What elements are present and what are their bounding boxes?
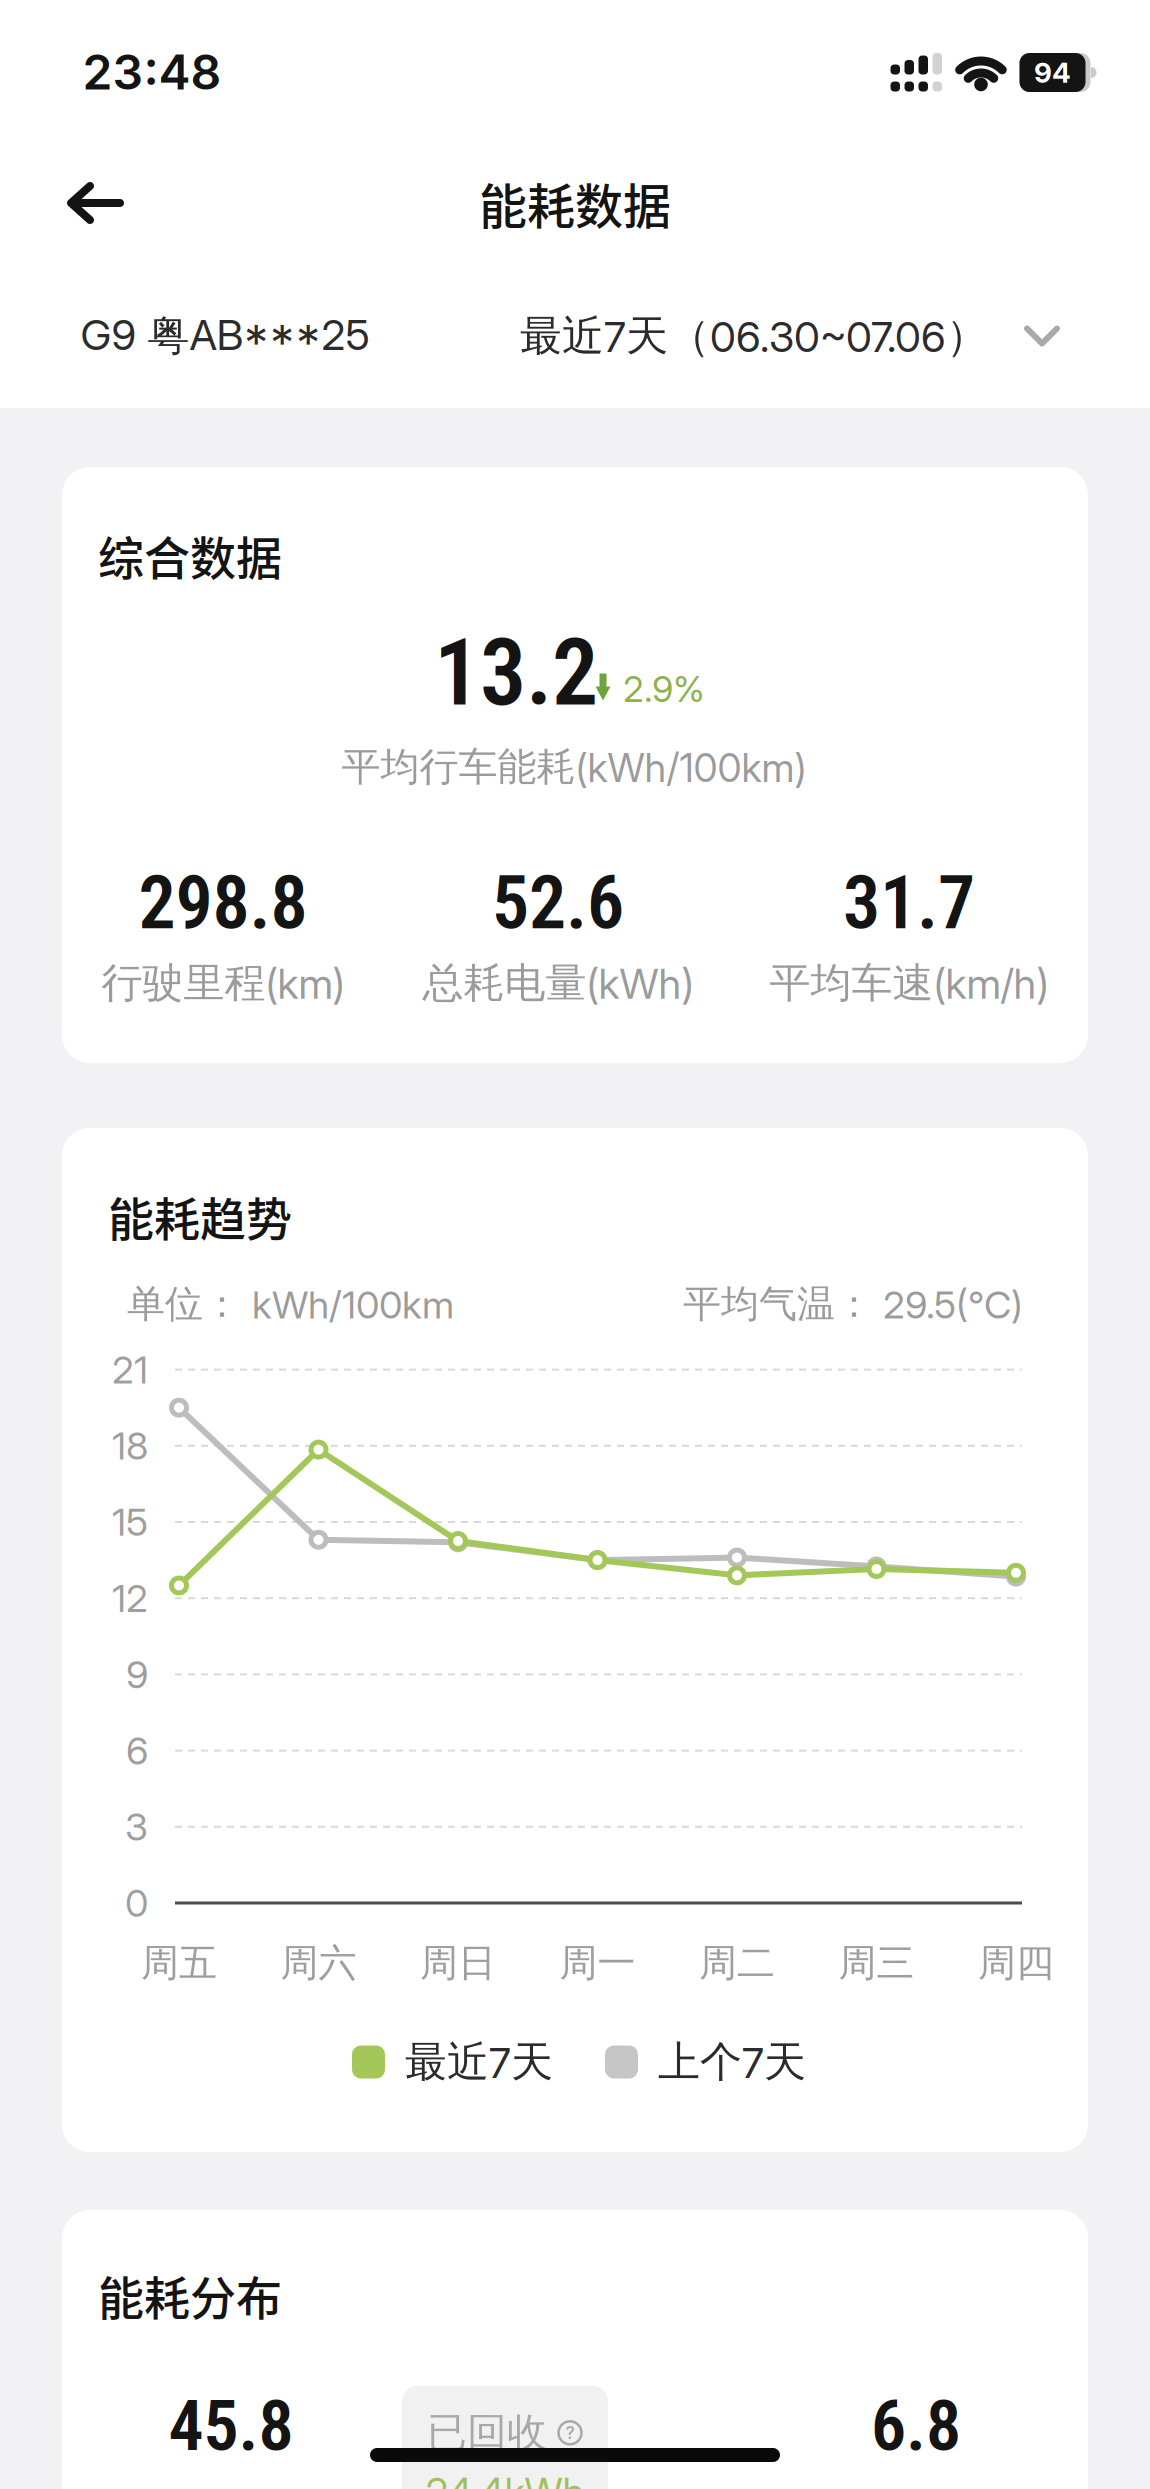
staticText: 9 xyxy=(126,1651,148,1697)
staticText: 综合数据 xyxy=(98,522,282,588)
button[interactable]: G9 粤AB***25 xyxy=(80,309,369,363)
staticText: 15 xyxy=(112,1499,148,1545)
staticText: 行驶里程(km) xyxy=(101,957,344,1009)
button[interactable]: 最近7天（06.30~07.06） xyxy=(520,309,1060,362)
staticText: 总耗电量(kWh) xyxy=(422,957,693,1009)
staticText: 单位： kWh/100km xyxy=(127,1280,454,1328)
staticText: G9 粤AB***25 xyxy=(80,309,369,363)
staticText: 298.8 xyxy=(138,860,307,946)
staticText: 平均气温： 29.5(°C) xyxy=(683,1280,1023,1328)
staticText: 周三 xyxy=(838,1939,914,1987)
staticText: 平均行车能耗(kWh/100km) xyxy=(341,742,806,791)
button[interactable]: Back xyxy=(45,163,145,243)
staticText: 23:48 xyxy=(82,43,221,101)
staticText: ? xyxy=(565,2422,574,2443)
staticText: 周五 xyxy=(141,1939,217,1987)
staticText: 最近7天（06.30~07.06） xyxy=(520,309,988,362)
staticText: 18 xyxy=(112,1423,148,1469)
staticText: 周二 xyxy=(699,1939,775,1987)
staticText: 6 xyxy=(126,1728,148,1774)
staticText: 平均车速(km/h) xyxy=(769,957,1048,1009)
staticText: 31.7 xyxy=(843,860,975,946)
button[interactable]: 已回收说明 xyxy=(402,2386,608,2489)
staticText: 12 xyxy=(112,1575,148,1621)
staticText: 周日 xyxy=(420,1939,496,1987)
staticText: 6.8 xyxy=(871,2385,961,2467)
staticText: 0 xyxy=(125,1880,148,1926)
staticText: 能耗趋势 xyxy=(108,1183,292,1249)
staticText: 94 xyxy=(1034,56,1071,89)
staticText: 45.8 xyxy=(168,2385,293,2467)
staticText: 2.9% xyxy=(623,667,705,711)
staticText: 21 xyxy=(112,1347,148,1393)
staticText: 周一 xyxy=(559,1939,635,1987)
staticText: 能耗分布 xyxy=(98,2262,282,2328)
staticText: 最近7天 xyxy=(405,2035,553,2088)
staticText: 能耗数据 xyxy=(479,168,671,238)
staticText: 24.4kWh xyxy=(425,2468,584,2489)
staticText: 13.2 xyxy=(434,619,598,727)
staticText: 3 xyxy=(125,1804,148,1850)
staticText: 已回收 xyxy=(427,2408,547,2458)
staticText: 周六 xyxy=(280,1939,356,1987)
staticText: 周四 xyxy=(978,1939,1054,1987)
staticText: 52.6 xyxy=(492,860,624,946)
staticText: 上个7天 xyxy=(658,2035,806,2088)
